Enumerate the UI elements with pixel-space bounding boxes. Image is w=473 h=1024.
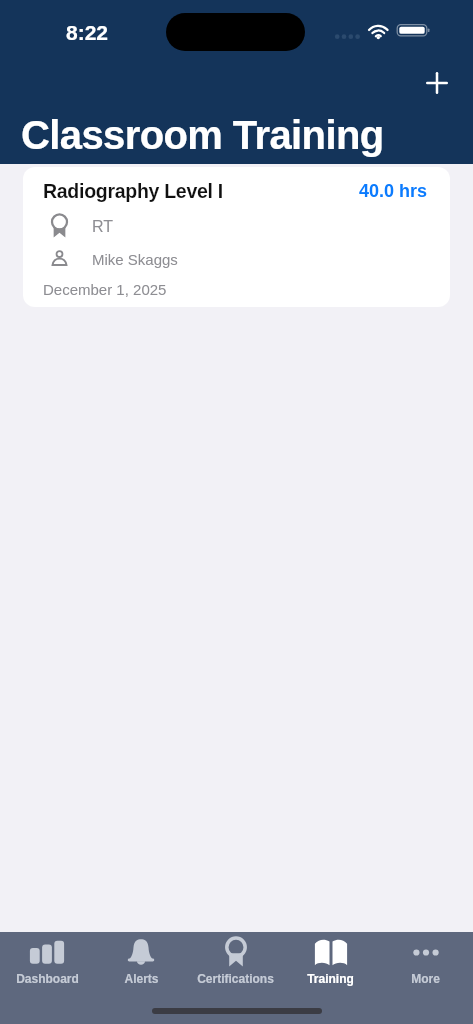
staticText: Certifications (197, 972, 274, 985)
staticText: Dashboard (16, 972, 79, 985)
button[interactable]: Alerts (94, 932, 188, 1024)
button[interactable]: Radiography Level I (23, 167, 450, 307)
staticText: 8:22 (66, 21, 109, 44)
staticText: Mike Skaggs (92, 251, 178, 268)
staticText: Training (307, 972, 354, 985)
button[interactable]: More (378, 932, 473, 1024)
staticText: Radiography Level I (43, 180, 223, 202)
staticText: December 1, 2025 (43, 281, 167, 298)
staticText: RT (92, 218, 114, 236)
button[interactable]: Training (283, 932, 378, 1024)
staticText: Classroom Training (21, 113, 384, 158)
staticText: More (411, 972, 440, 985)
button[interactable]: Certifications (188, 932, 283, 1024)
staticText: 40.0 hrs (359, 181, 428, 201)
staticText: Alerts (124, 972, 159, 985)
button[interactable]: Add training (416, 62, 458, 104)
button[interactable]: Dashboard (0, 932, 94, 1024)
